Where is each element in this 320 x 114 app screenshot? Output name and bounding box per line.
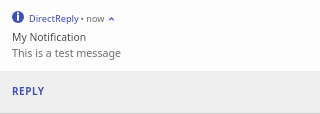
button[interactable]: REPLY [4,76,53,106]
button[interactable]: Collapse [106,13,116,23]
button[interactable]: DirectReply [0,0,320,71]
staticText: DirectReply [29,12,79,24]
staticText: My Notification [12,30,87,44]
staticText: This is a test message [12,46,122,61]
staticText: REPLY [12,84,45,98]
staticText: • now [79,12,105,24]
